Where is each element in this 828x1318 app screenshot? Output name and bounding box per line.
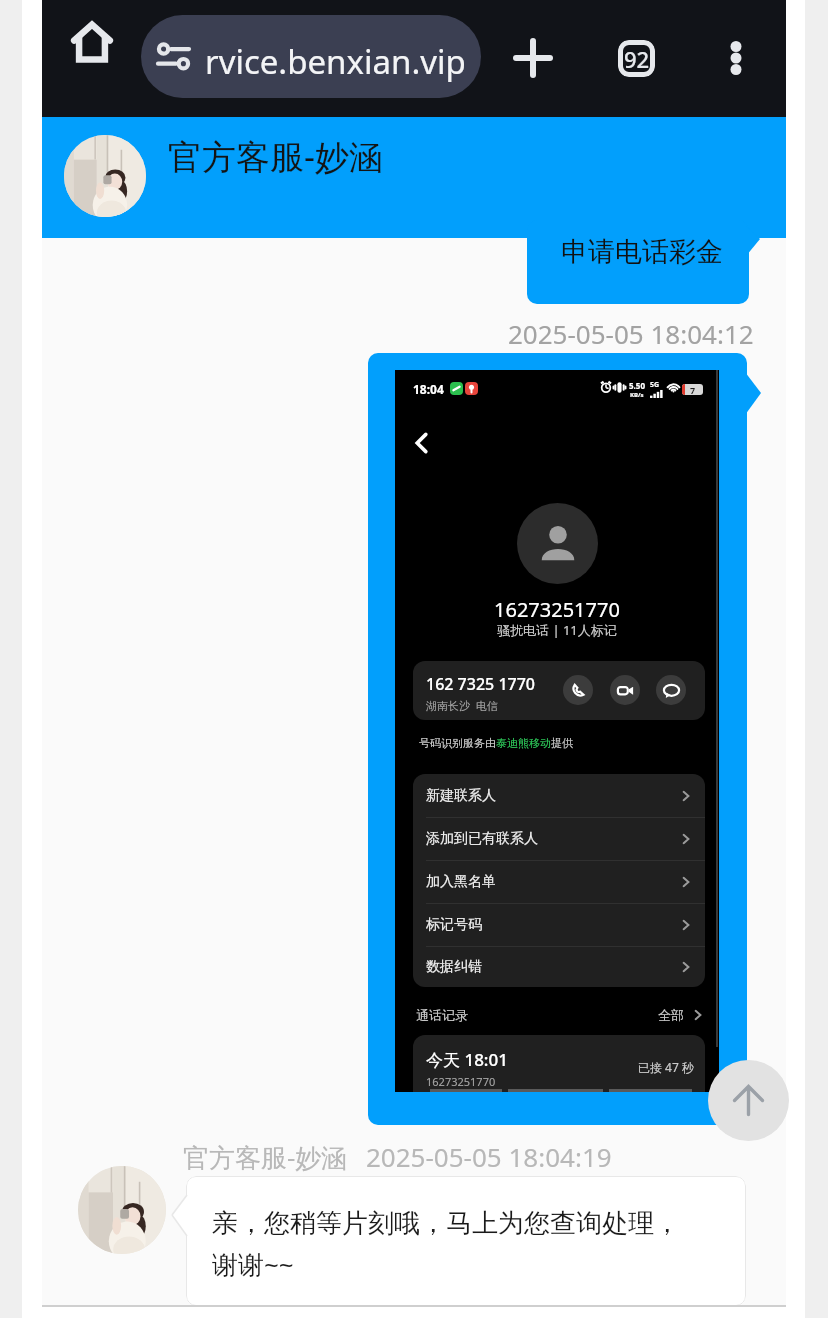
button[interactable]: 加入黑名单 bbox=[413, 861, 705, 903]
staticText: 骚扰电话 | 11人标记 bbox=[497, 621, 617, 639]
staticText: 已接 47 秒 bbox=[638, 1059, 694, 1075]
staticText: 7 bbox=[690, 384, 696, 395]
button[interactable]: Call bbox=[563, 675, 593, 705]
button[interactable]: 新建联系人 bbox=[413, 774, 705, 817]
button[interactable]: Scroll to top bbox=[708, 1060, 789, 1141]
staticText: 加入黑名单 bbox=[426, 873, 496, 891]
staticText: 今天 18:01 bbox=[426, 1048, 508, 1071]
staticText: 湖南长沙 电信 bbox=[426, 698, 498, 713]
staticText: 标记号码 bbox=[426, 916, 482, 934]
button[interactable]: 标记号码 bbox=[413, 904, 705, 946]
staticText: rvice.benxian.vip bbox=[205, 39, 466, 84]
button[interactable]: 亲，您稍等片刻哦，马上为您查询处理，谢谢~~ bbox=[186, 1176, 746, 1306]
button[interactable]: 申请电话彩金 bbox=[527, 220, 749, 304]
staticText: 18:04 bbox=[413, 381, 444, 397]
staticText: 数据纠错 bbox=[426, 958, 482, 976]
staticText: 2025-05-05 18:04:19 bbox=[366, 1139, 612, 1174]
staticText: 5.50 bbox=[629, 380, 645, 391]
staticText: 官方客服-妙涵 bbox=[168, 133, 383, 179]
staticText: 亲，您稍等片刻哦，马上为您查询处理，谢谢~~ bbox=[212, 1207, 697, 1282]
staticText: 16273251770 bbox=[494, 596, 620, 623]
staticText: 官方客服-妙涵 bbox=[183, 1139, 348, 1175]
staticText: 162 7325 1770 bbox=[426, 673, 535, 695]
button[interactable]: New tab bbox=[500, 25, 566, 91]
button[interactable]: 数据纠错 bbox=[413, 947, 705, 987]
staticText: 2025-05-05 18:04:12 bbox=[508, 316, 754, 351]
staticText: 新建联系人 bbox=[426, 787, 496, 805]
button[interactable]: Tabs bbox=[603, 25, 669, 91]
button[interactable]: rvice.benxian.vip bbox=[141, 15, 481, 98]
staticText: 提供 bbox=[551, 736, 573, 750]
staticText: 号码识别服务由 bbox=[419, 736, 496, 750]
button[interactable]: Home bbox=[59, 9, 125, 75]
staticText: 通话记录 bbox=[416, 1007, 468, 1023]
staticText: 添加到已有联系人 bbox=[426, 830, 538, 848]
staticText: 5G bbox=[650, 380, 660, 390]
button[interactable]: 添加到已有联系人 bbox=[413, 818, 705, 860]
staticText: 全部 bbox=[658, 1007, 684, 1023]
staticText: 16273251770 bbox=[426, 1074, 496, 1089]
staticText: 申请电话彩金 bbox=[561, 235, 723, 269]
button[interactable] bbox=[368, 353, 747, 1125]
staticText: 泰迪熊移动 bbox=[496, 736, 551, 750]
staticText: 92 bbox=[624, 44, 650, 74]
button[interactable]: Back bbox=[404, 425, 440, 461]
staticText: KB/s bbox=[630, 391, 644, 399]
button[interactable]: Video call bbox=[610, 675, 640, 705]
button[interactable]: More options bbox=[703, 25, 769, 91]
button[interactable]: Message bbox=[656, 675, 686, 705]
